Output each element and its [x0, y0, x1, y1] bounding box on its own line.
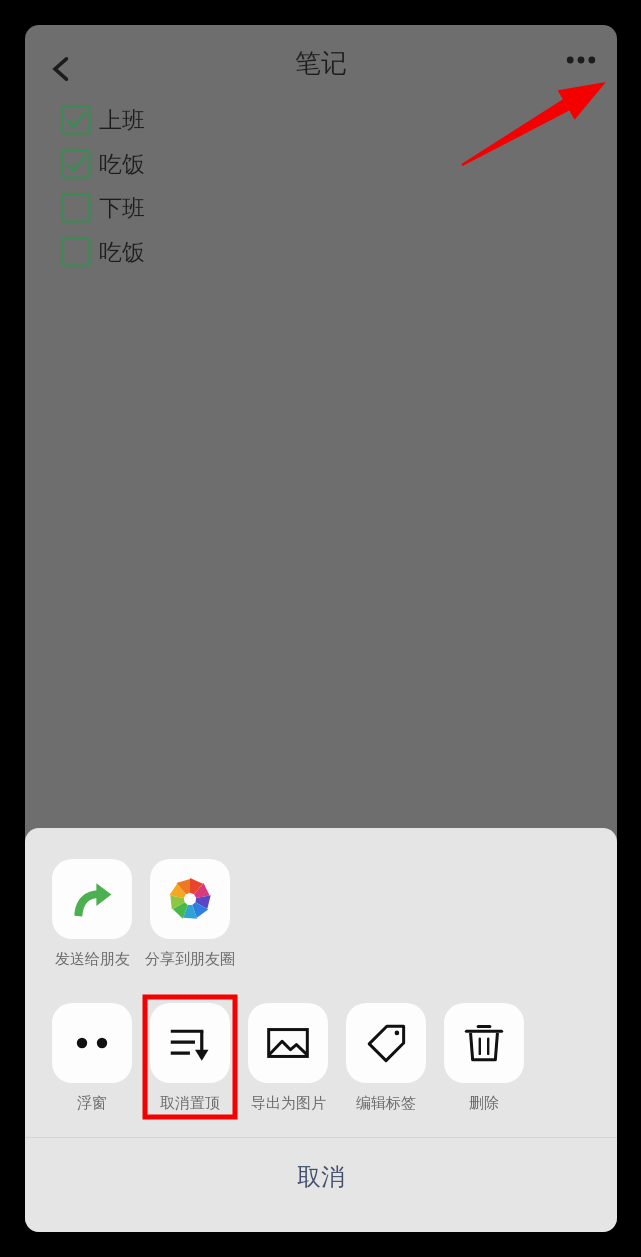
button[interactable]: Unpin: [150, 1003, 230, 1113]
other: Delete: [463, 1022, 505, 1064]
button[interactable]: 上班: [61, 98, 145, 142]
other: Share to Moments: [169, 878, 211, 920]
staticText: 编辑标签: [356, 1094, 416, 1113]
staticText: 取消: [297, 1162, 345, 1192]
button[interactable]: 吃饭: [61, 230, 145, 274]
staticText: 分享到朋友圈: [145, 950, 235, 969]
staticText: 导出为图片: [251, 1094, 326, 1113]
other: Export as image: [267, 1022, 309, 1064]
button[interactable]: 吃饭: [61, 142, 145, 186]
staticText: 删除: [469, 1094, 499, 1113]
button[interactable]: Back: [35, 43, 87, 95]
button[interactable]: Edit tag: [346, 1003, 426, 1113]
other: Edit tag: [365, 1022, 407, 1064]
staticText: 发送给朋友: [55, 950, 130, 969]
button[interactable]: Export as image: [248, 1003, 328, 1113]
staticText: 下班: [99, 194, 145, 223]
staticText: 吃饭: [99, 150, 145, 179]
other: Send to friend: [70, 877, 114, 921]
button[interactable]: More options: [553, 34, 609, 90]
other: Floating window: [70, 1021, 114, 1065]
staticText: 笔记: [295, 47, 347, 80]
button[interactable]: Send to friend: [52, 859, 132, 969]
button[interactable]: Share to Moments: [145, 859, 235, 969]
button[interactable]: 取消: [25, 1138, 617, 1216]
button[interactable]: 下班: [61, 186, 145, 230]
staticText: 浮窗: [77, 1094, 107, 1113]
other: Unpin: [169, 1022, 211, 1064]
button[interactable]: Delete: [444, 1003, 524, 1113]
staticText: 上班: [99, 106, 145, 135]
staticText: 取消置顶: [160, 1094, 220, 1113]
staticText: 吃饭: [99, 238, 145, 267]
button[interactable]: Floating window: [52, 1003, 132, 1113]
